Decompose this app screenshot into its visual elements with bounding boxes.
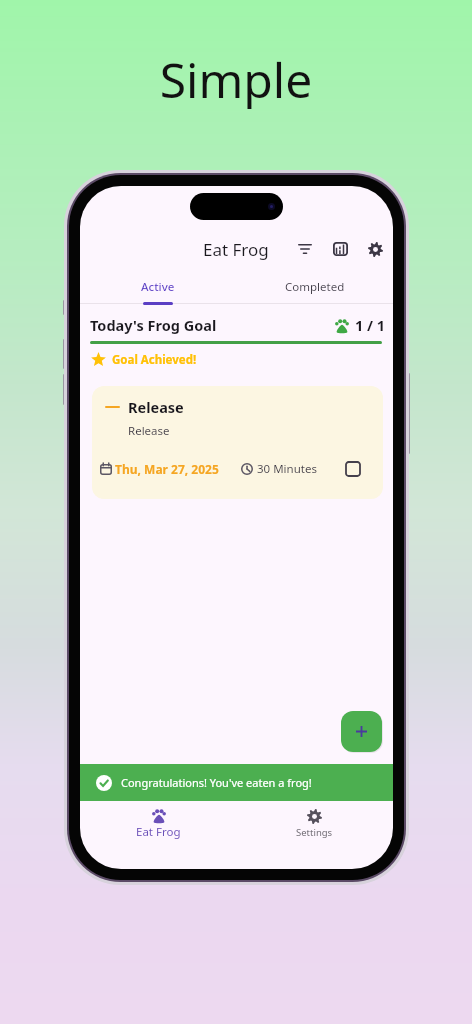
staticText: 30 Minutes — [257, 461, 317, 477]
staticText: Eat Frog — [203, 238, 269, 261]
button[interactable]: Mark complete — [346, 462, 360, 476]
staticText: Today's Frog Goal — [90, 315, 217, 335]
staticText: Release — [128, 423, 170, 439]
button[interactable]: Completed — [236, 275, 393, 299]
staticText: Release — [128, 397, 184, 417]
staticText: Thu, Mar 27, 2025 — [115, 461, 219, 477]
staticText: Active — [141, 279, 175, 295]
staticText: Eat Frog — [136, 824, 181, 840]
staticText: Goal Achieved! — [112, 352, 197, 368]
button[interactable]: Add task — [341, 711, 382, 752]
button[interactable]: Filter — [293, 237, 317, 261]
staticText: Completed — [285, 279, 345, 295]
button[interactable]: Active — [80, 275, 236, 299]
button[interactable]: Settings — [363, 237, 387, 261]
staticText: 1 / 1 — [355, 315, 386, 335]
button[interactable]: Eat Frog — [80, 801, 236, 856]
staticText: Settings — [296, 826, 333, 839]
button[interactable]: Release — [92, 386, 383, 499]
button[interactable]: Settings — [236, 801, 393, 856]
button[interactable]: Statistics — [328, 237, 352, 261]
staticText: Congratulations! You've eaten a frog! — [121, 775, 312, 790]
staticText: Simple — [0, 47, 472, 112]
